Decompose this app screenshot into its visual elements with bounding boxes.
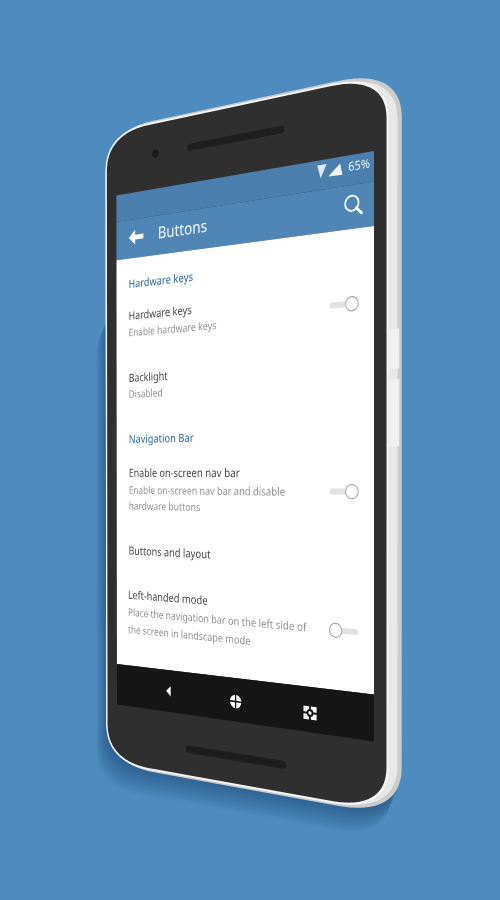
- button[interactable]: [0, 0, 500, 900]
